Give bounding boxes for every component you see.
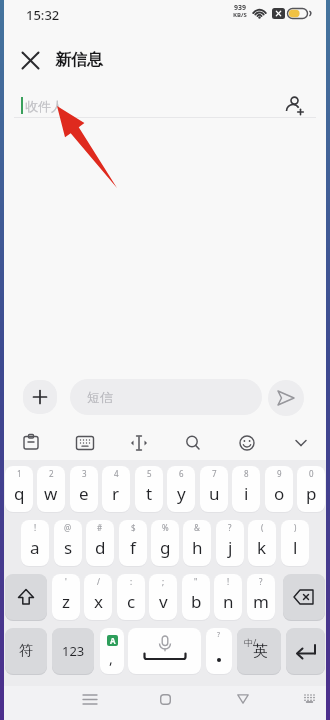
button[interactable]: 中/ — [237, 628, 281, 674]
staticText: u — [209, 482, 220, 505]
staticText: , — [109, 649, 113, 668]
button[interactable] — [74, 684, 106, 714]
button[interactable] — [5, 574, 47, 620]
staticText: 939 — [234, 3, 247, 13]
staticText: w — [44, 482, 58, 505]
button[interactable]: ( — [248, 520, 276, 566]
button[interactable] — [128, 628, 201, 674]
staticText: 4 — [114, 468, 119, 479]
staticText: s — [64, 536, 73, 559]
staticText: 0 — [309, 468, 314, 479]
staticText: ! — [227, 576, 230, 587]
button[interactable]: 3 — [70, 466, 98, 512]
staticText: n — [223, 590, 234, 613]
button[interactable]: ) — [281, 520, 309, 566]
button[interactable]: ; — [149, 574, 177, 620]
staticText: 15:32 — [26, 6, 60, 24]
staticText: 123 — [62, 642, 85, 660]
button[interactable]: ? — [216, 520, 244, 566]
button[interactable]: 2 — [37, 466, 65, 512]
staticText: % — [162, 522, 169, 533]
staticText: o — [274, 482, 285, 505]
staticText: t — [146, 482, 153, 505]
button[interactable]: / — [84, 574, 112, 620]
button[interactable]: : — [117, 574, 145, 620]
button[interactable] — [124, 428, 154, 458]
staticText: q — [14, 482, 25, 505]
staticText: k — [257, 536, 267, 559]
button[interactable]: A — [100, 628, 124, 674]
button[interactable]: " — [182, 574, 210, 620]
staticText: l — [293, 536, 298, 559]
staticText: i — [244, 482, 249, 505]
staticText: 9 — [277, 468, 282, 479]
staticText: r — [112, 482, 120, 505]
button[interactable]: 6 — [167, 466, 195, 512]
button[interactable]: ! — [214, 574, 242, 620]
button[interactable] — [286, 628, 325, 674]
button[interactable] — [227, 684, 259, 714]
button[interactable] — [14, 44, 46, 76]
button[interactable]: ? — [206, 628, 232, 674]
button[interactable] — [149, 684, 181, 714]
staticText: a — [30, 536, 40, 559]
button[interactable]: % — [151, 520, 179, 566]
button[interactable]: 短信 — [70, 379, 262, 415]
staticText: j — [228, 536, 233, 559]
button[interactable]: ? — [247, 574, 275, 620]
staticText: e — [79, 482, 89, 505]
staticText: 7 — [212, 468, 217, 479]
staticText: KB/S — [233, 11, 247, 19]
staticText: d — [95, 536, 106, 559]
staticText: " — [194, 576, 198, 587]
button[interactable]: 4 — [102, 466, 130, 512]
button[interactable] — [16, 428, 46, 458]
staticText: / — [97, 576, 100, 587]
button[interactable] — [70, 428, 100, 458]
staticText: 新信息 — [55, 50, 103, 70]
staticText: @ — [64, 522, 72, 533]
staticText: ? — [217, 630, 221, 640]
button[interactable]: @ — [54, 520, 82, 566]
button[interactable] — [23, 380, 57, 414]
staticText: & — [194, 522, 200, 533]
button[interactable]: 123 — [52, 628, 94, 674]
button[interactable] — [296, 684, 322, 712]
staticText: 中/ — [244, 636, 257, 648]
button[interactable]: 1 — [5, 466, 33, 512]
staticText: 3 — [82, 468, 87, 479]
button[interactable]: 7 — [200, 466, 228, 512]
button[interactable] — [178, 428, 208, 458]
button[interactable] — [268, 380, 304, 416]
button[interactable] — [232, 428, 262, 458]
staticText: 英 — [253, 642, 268, 661]
button[interactable]: 符 — [5, 628, 47, 674]
staticText: ? — [259, 576, 263, 587]
button[interactable]: ' — [52, 574, 80, 620]
staticText: $ — [131, 522, 136, 533]
staticText: ? — [228, 522, 232, 533]
staticText: 5 — [147, 468, 152, 479]
button[interactable]: ! — [21, 520, 49, 566]
button[interactable] — [286, 428, 316, 458]
staticText: m — [253, 590, 269, 613]
staticText: f — [130, 536, 136, 559]
staticText: 短信 — [87, 389, 113, 405]
staticText: c — [127, 590, 136, 613]
staticText: 收件人 — [25, 98, 64, 114]
button[interactable]: & — [183, 520, 211, 566]
button[interactable]: 0 — [297, 466, 325, 512]
staticText: 6 — [179, 468, 184, 479]
button[interactable] — [280, 92, 308, 120]
staticText: : — [130, 576, 133, 587]
staticText: 2 — [49, 468, 54, 479]
button[interactable]: 5 — [135, 466, 163, 512]
button[interactable]: $ — [119, 520, 147, 566]
staticText: g — [160, 536, 171, 559]
staticText: ( — [261, 522, 264, 533]
button[interactable]: 8 — [232, 466, 260, 512]
button[interactable]: # — [86, 520, 114, 566]
staticText: 1 — [17, 468, 22, 479]
button[interactable]: 9 — [265, 466, 293, 512]
button[interactable] — [283, 574, 325, 620]
